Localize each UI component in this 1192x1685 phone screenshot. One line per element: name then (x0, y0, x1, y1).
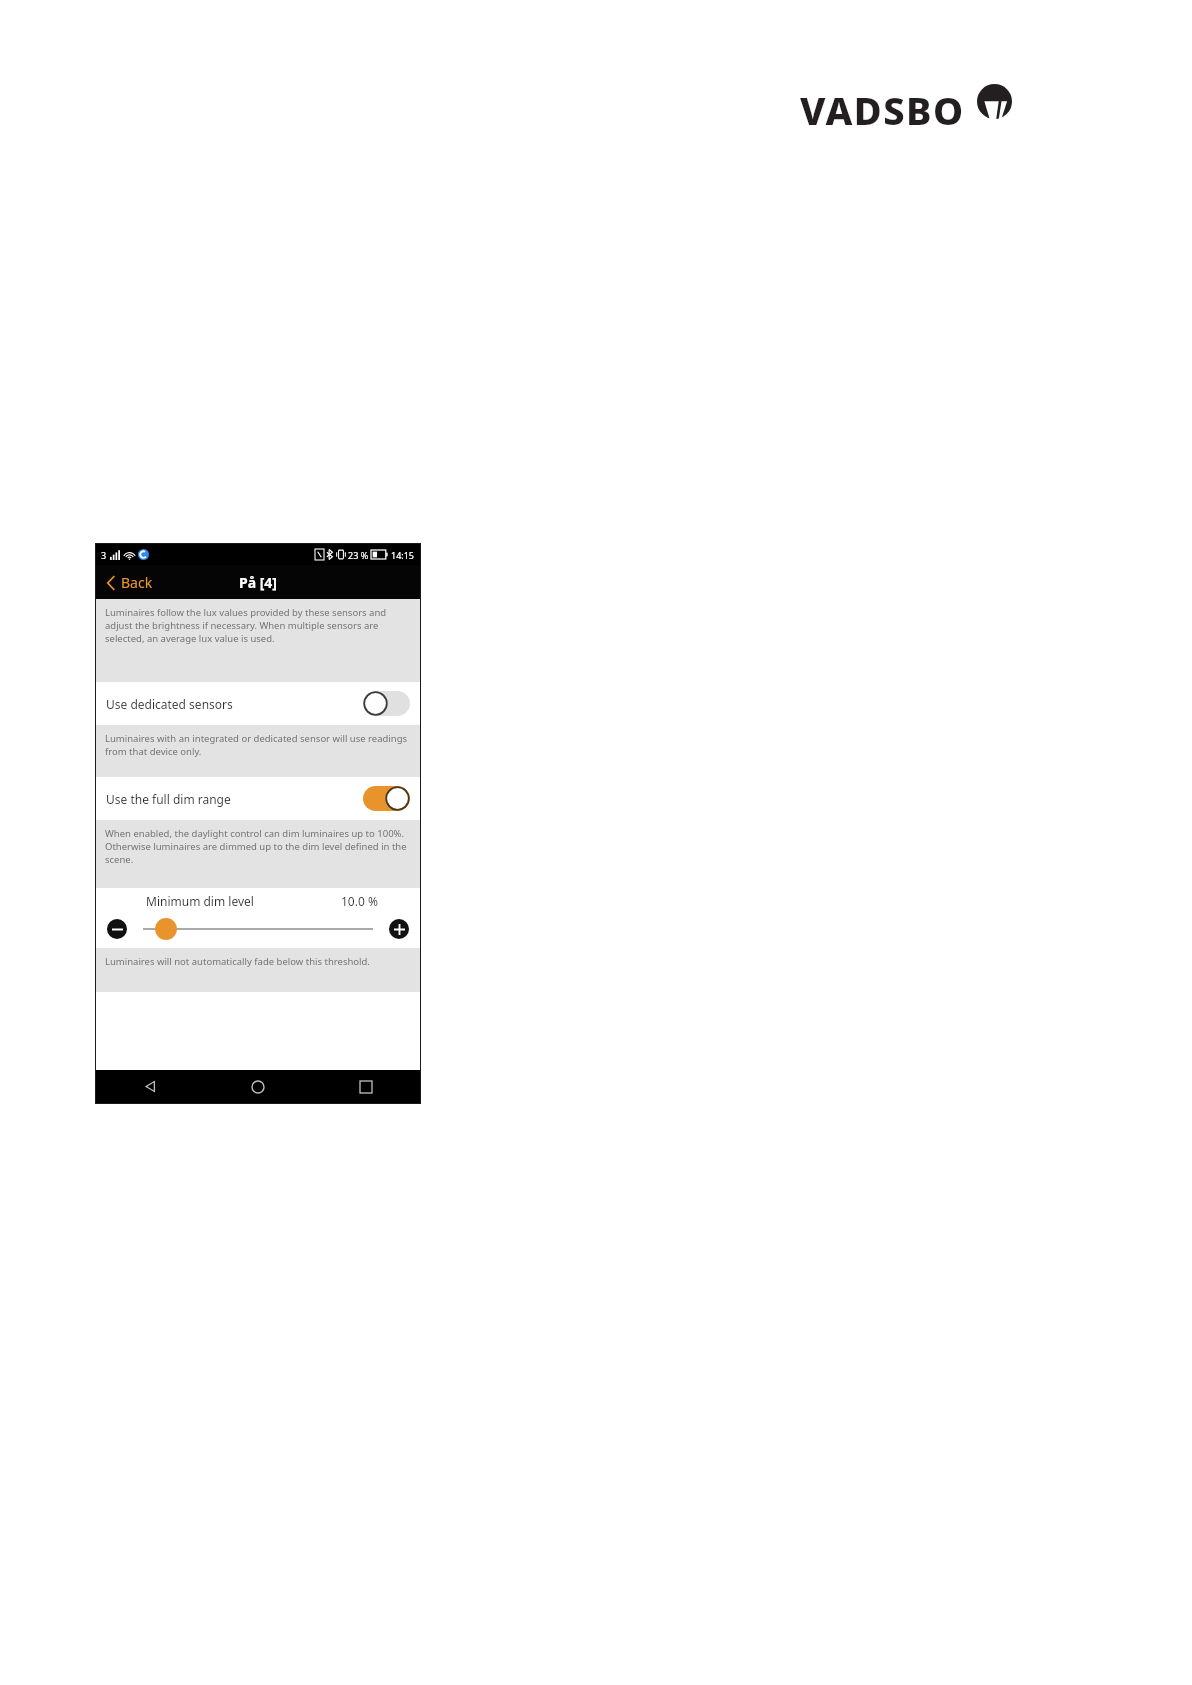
button[interactable]: On (363, 786, 410, 811)
staticText: Minimum dim level (146, 893, 254, 909)
button[interactable]: Increase (389, 919, 409, 939)
button[interactable]: Use dedicated sensors (96, 682, 420, 725)
button[interactable]: Back (96, 1070, 204, 1103)
button[interactable]: Back (96, 566, 167, 599)
button[interactable]: Recent apps (312, 1070, 420, 1103)
button[interactable]: Minimum dim level slider (143, 916, 373, 942)
staticText: Use the full dim range (106, 791, 231, 807)
staticText: When enabled, the daylight control can d… (105, 827, 411, 866)
staticText: Luminaires will not automatically fade b… (105, 955, 370, 968)
staticText: VADSBO (800, 84, 965, 136)
staticText: 14:15 (391, 549, 415, 561)
staticText: Back (121, 573, 153, 592)
button[interactable]: Decrease (107, 919, 127, 939)
button[interactable]: Off (363, 691, 410, 716)
button[interactable]: Use the full dim range (96, 777, 420, 820)
staticText: 3 (101, 549, 107, 561)
staticText: Use dedicated sensors (106, 696, 233, 712)
staticText: På [4] (239, 573, 277, 592)
staticText: 23 % (348, 549, 369, 561)
staticText: Luminaires follow the lux values provide… (105, 606, 411, 645)
staticText: Luminaires with an integrated or dedicat… (105, 732, 411, 758)
button[interactable]: Home (204, 1070, 312, 1103)
staticText: 10.0 % (341, 893, 378, 909)
